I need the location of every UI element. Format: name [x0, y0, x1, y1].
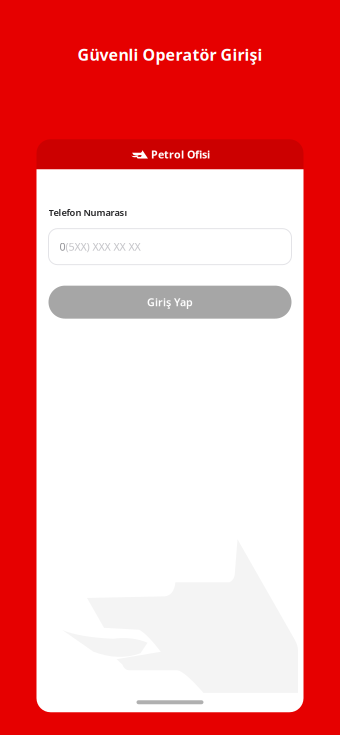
staticText: Güvenli Operatör Girişi — [77, 44, 262, 65]
button[interactable]: Giriş Yap — [48, 286, 291, 319]
staticText: Petrol Ofisi — [151, 147, 210, 161]
staticText: Giriş Yap — [147, 295, 193, 309]
staticText: Telefon Numarası — [48, 206, 127, 219]
staticText: 0 — [59, 240, 65, 254]
staticText: (5XX) XXX XX XX — [65, 240, 140, 254]
